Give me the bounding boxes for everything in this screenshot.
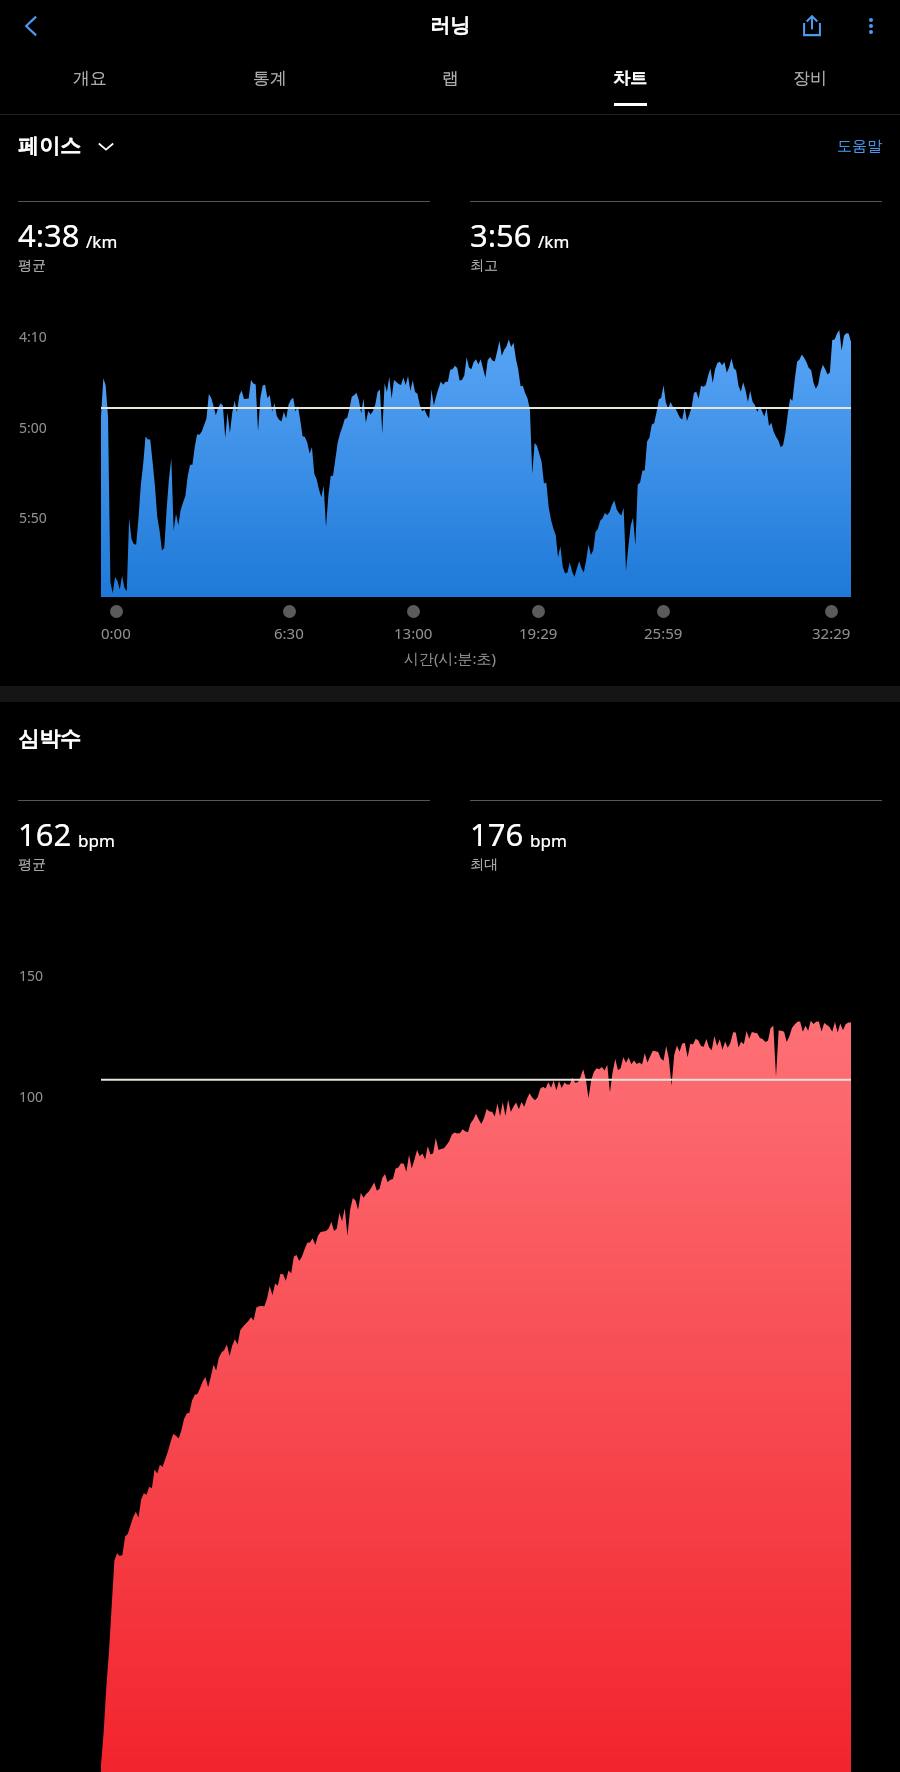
button[interactable]: 도움말 [837,137,882,156]
staticText: 4:38 [18,214,80,256]
staticText: 32:29 [812,623,851,643]
staticText: 장비 [793,68,827,89]
staticText: 최대 [470,856,498,874]
staticText: 162 [18,813,72,855]
button[interactable]: Back [0,0,62,51]
staticText: 평균 [18,257,46,275]
staticText: bpm [78,829,115,852]
staticText: 150 [19,966,44,985]
button[interactable]: 페이스 [18,133,115,159]
staticText: 평균 [18,856,46,874]
staticText: /km [538,230,570,253]
staticText: 랩 [442,68,459,89]
staticText: 13:00 [394,623,433,643]
button[interactable]: 랩 [360,51,540,114]
staticText: 100 [19,1087,44,1106]
button[interactable]: More options [842,0,900,51]
staticText: 19:29 [519,623,558,643]
staticText: /km [86,230,118,253]
staticText: 차트 [613,68,647,89]
staticText: 6:30 [274,623,304,643]
staticText: 25:59 [644,623,683,643]
staticText: 도움말 [837,137,882,156]
staticText: 시간(시:분:초) [0,648,900,668]
staticText: 4:10 [19,327,47,346]
staticText: 개요 [73,68,107,89]
staticText: 176 [470,813,524,855]
staticText: 최고 [470,257,498,275]
staticText: 3:56 [470,214,532,256]
button[interactable]: 개요 [0,51,180,114]
staticText: 0:00 [101,623,131,643]
button[interactable]: 통계 [180,51,360,114]
button[interactable]: 차트 [540,51,720,114]
staticText: 러닝 [430,13,470,38]
staticText: bpm [530,829,567,852]
button[interactable]: Share [782,0,842,51]
staticText: 5:00 [19,418,47,437]
staticText: 페이스 [18,133,81,159]
button[interactable]: 장비 [720,51,900,114]
staticText: 심박수 [18,726,81,752]
staticText: 5:50 [19,508,47,527]
staticText: 통계 [253,68,287,89]
